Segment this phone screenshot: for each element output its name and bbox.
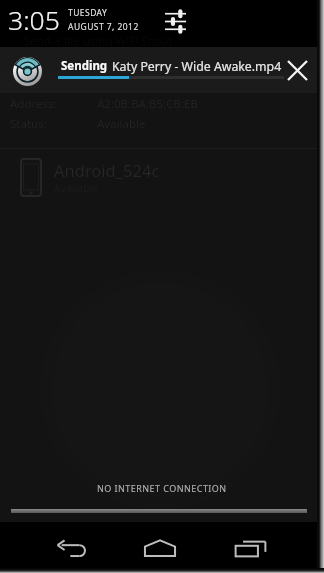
button[interactable]: Back — [57, 541, 86, 557]
button[interactable]: Android_524c — [0, 149, 324, 205]
staticText: AUGUST 7, 2012 — [68, 21, 139, 33]
staticText: A2:0B:BA:B5:CB:EB — [97, 96, 198, 112]
button[interactable]: Recent apps — [235, 541, 266, 557]
staticText: Sending — [61, 58, 108, 74]
button[interactable]: Home — [144, 539, 176, 557]
staticText: 3:05 — [8, 2, 60, 38]
button[interactable]: Sending — [0, 47, 324, 93]
staticText: NO INTERNET CONNECTION — [97, 482, 227, 494]
staticText: Send a file using WiFi Shoot — [24, 33, 173, 49]
staticText: TUESDAY — [68, 7, 108, 19]
staticText: Katy Perry - Wide Awake.mp4 — [112, 58, 282, 75]
staticText: Android_524c — [54, 159, 160, 181]
button[interactable]: Quick settings — [161, 7, 190, 36]
button[interactable]: Dismiss notification — [281, 51, 313, 89]
staticText: Available — [97, 116, 146, 132]
